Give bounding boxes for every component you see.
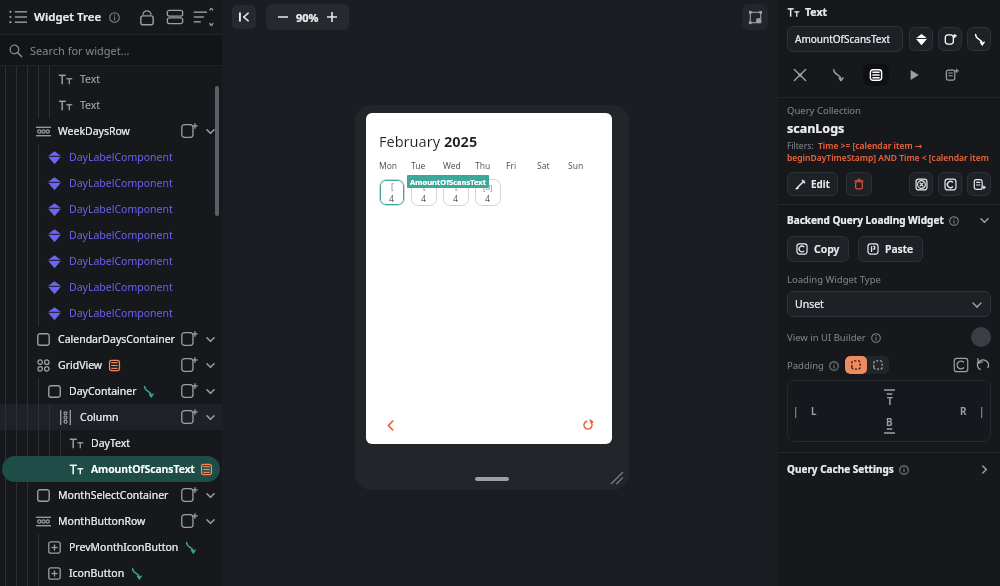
- button[interactable]: [: [411, 179, 437, 206]
- staticText: MonthSelectContainer: [58, 488, 169, 502]
- button[interactable]: Backend query: [863, 64, 889, 86]
- button[interactable]: Expand: [202, 331, 218, 347]
- button[interactable]: AmountOfScansText: [0, 456, 222, 482]
- button[interactable]: List: [8, 7, 28, 27]
- button[interactable]: Select tool: [742, 4, 768, 30]
- staticText: AmountOfScansText: [795, 32, 891, 46]
- staticText: Copy: [814, 242, 840, 256]
- staticText: DayLabelComponent: [69, 280, 173, 294]
- staticText: IconButton: [69, 566, 125, 580]
- staticText: 4: [389, 192, 395, 204]
- button[interactable]: Notes: [939, 64, 965, 86]
- button[interactable]: Zoom out: [274, 8, 292, 26]
- button[interactable]: Actions: [825, 64, 851, 86]
- button[interactable]: Reset padding: [975, 357, 991, 373]
- button[interactable]: Info: [107, 10, 121, 24]
- button[interactable]: Style: [787, 64, 813, 86]
- button[interactable]: Previous month: [379, 414, 401, 436]
- staticText: 4: [485, 192, 491, 204]
- button[interactable]: MonthSelectContainer: [0, 482, 222, 508]
- button[interactable]: DayLabelComponent: [0, 196, 222, 222]
- button[interactable]: Add child: [180, 408, 198, 426]
- button[interactable]: View in UI Builder: [787, 327, 991, 347]
- button[interactable]: Delete: [846, 172, 872, 196]
- staticText: 4: [421, 192, 427, 204]
- button[interactable]: Expand: [202, 357, 218, 373]
- staticText: Fri: [506, 160, 517, 172]
- staticText: WeekDaysRow: [58, 124, 130, 138]
- staticText: Tue: [411, 160, 426, 172]
- button[interactable]: DayLabelComponent: [0, 274, 222, 300]
- staticText: Edit: [811, 177, 830, 191]
- button[interactable]: Collapse panel: [232, 5, 256, 29]
- button[interactable]: Individual padding: [867, 356, 889, 374]
- button[interactable]: Expand: [202, 513, 218, 529]
- button[interactable]: Text: [0, 92, 222, 118]
- button[interactable]: Save: [967, 172, 991, 196]
- button[interactable]: Search for widget...: [9, 35, 213, 65]
- staticText: Query Collection: [787, 104, 861, 117]
- button[interactable]: Layers: [164, 6, 186, 28]
- staticText: AmountOfScansText: [91, 462, 195, 476]
- button[interactable]: [: [443, 179, 469, 206]
- button[interactable]: DayLabelComponent: [0, 170, 222, 196]
- button[interactable]: Reset: [577, 414, 599, 436]
- button[interactable]: Backend Query Loading Widget: [787, 213, 991, 227]
- button[interactable]: Text: [0, 66, 222, 92]
- button[interactable]: Paste: [858, 236, 923, 262]
- button[interactable]: Zoom in: [323, 8, 341, 26]
- button[interactable]: Actions: [967, 27, 991, 51]
- staticText: [: [455, 181, 458, 192]
- button[interactable]: Add child: [180, 486, 198, 504]
- staticText: PrevMonthIconButton: [69, 540, 179, 554]
- staticText: DayLabelComponent: [69, 202, 173, 216]
- staticText: Time >= [calendar item →: [818, 140, 922, 152]
- button[interactable]: Edit: [787, 172, 838, 196]
- button[interactable]: Column: [0, 404, 222, 430]
- button[interactable]: CalendarDaysContainer: [0, 326, 222, 352]
- staticText: scanLogs: [787, 120, 845, 137]
- button[interactable]: Add child: [180, 122, 198, 140]
- button[interactable]: Sort: [192, 6, 214, 28]
- button[interactable]: Component: [909, 27, 933, 51]
- button[interactable]: Unset: [787, 291, 991, 317]
- button[interactable]: Add child: [180, 356, 198, 374]
- button[interactable]: WeekDaysRow: [0, 118, 222, 144]
- button[interactable]: [: [379, 179, 405, 206]
- button[interactable]: Copy padding: [953, 357, 969, 373]
- button[interactable]: PrevMonthIconButton: [0, 534, 222, 560]
- button[interactable]: AmountOfScansText: [787, 26, 903, 52]
- button[interactable]: Expand: [202, 487, 218, 503]
- button[interactable]: DayLabelComponent: [0, 248, 222, 274]
- button[interactable]: DayLabelComponent: [0, 222, 222, 248]
- staticText: DayLabelComponent: [69, 306, 173, 320]
- staticText: 90%: [296, 10, 319, 25]
- button[interactable]: Variable: [909, 172, 933, 196]
- button[interactable]: IconButton: [0, 560, 222, 586]
- button[interactable]: Query Cache Settings: [787, 462, 991, 476]
- staticText: Unset: [795, 297, 824, 311]
- staticText: Loading Widget Type: [787, 273, 881, 286]
- button[interactable]: Run: [901, 64, 927, 86]
- button[interactable]: Expand: [202, 383, 218, 399]
- button[interactable]: DayLabelComponent: [0, 144, 222, 170]
- button[interactable]: DayContainer: [0, 378, 222, 404]
- button[interactable]: Add widget: [938, 27, 962, 51]
- button[interactable]: Lock: [136, 6, 158, 28]
- staticText: DayLabelComponent: [69, 150, 173, 164]
- button[interactable]: Add child: [180, 382, 198, 400]
- button[interactable]: Copy: [787, 236, 849, 262]
- staticText: L: [811, 404, 817, 418]
- button[interactable]: Add child: [180, 512, 198, 530]
- button[interactable]: All padding: [845, 356, 867, 374]
- button[interactable]: Expand: [202, 409, 218, 425]
- button[interactable]: MonthButtonRow: [0, 508, 222, 534]
- staticText: Widget Tree: [34, 9, 102, 25]
- button[interactable]: Copy ref: [938, 172, 962, 196]
- button[interactable]: [d]: [475, 179, 501, 206]
- button[interactable]: GridView: [0, 352, 222, 378]
- button[interactable]: Add child: [180, 330, 198, 348]
- button[interactable]: DayLabelComponent: [0, 300, 222, 326]
- button[interactable]: Expand: [202, 123, 218, 139]
- button[interactable]: DayText: [0, 430, 222, 456]
